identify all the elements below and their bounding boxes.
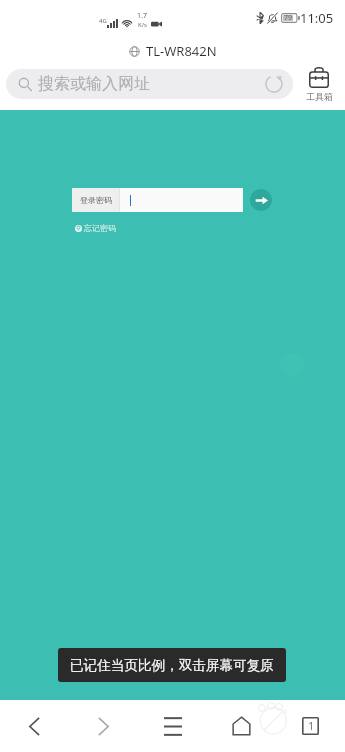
button[interactable]: Back bbox=[0, 700, 69, 752]
staticText: 79 bbox=[284, 13, 293, 23]
staticText: 搜索或输入网址 bbox=[38, 74, 150, 94]
staticText: 11:05 bbox=[300, 9, 334, 27]
staticText: 已记住当页比例，双击屏幕可复原 bbox=[70, 657, 274, 674]
staticText: 4G bbox=[99, 17, 107, 25]
button[interactable]: 搜索或输入网址 bbox=[6, 69, 293, 99]
button[interactable]: Tabs bbox=[276, 700, 345, 752]
button[interactable]: 登录密码 bbox=[72, 188, 243, 212]
button[interactable]: Login bbox=[250, 189, 272, 211]
button[interactable]: 忘记密码 bbox=[75, 223, 116, 233]
staticText: 1.7 bbox=[137, 11, 147, 21]
button[interactable]: Forward bbox=[69, 700, 138, 752]
staticText: K/s bbox=[138, 21, 147, 29]
button[interactable]: 工具箱 bbox=[302, 67, 336, 102]
button[interactable]: Refresh bbox=[259, 69, 289, 99]
button[interactable]: Menu bbox=[138, 700, 207, 752]
staticText: TL-WR842N bbox=[146, 42, 217, 60]
staticText: 1 bbox=[308, 719, 314, 733]
staticText: 登录密码 bbox=[80, 195, 112, 205]
staticText: 工具箱 bbox=[306, 91, 333, 102]
button[interactable]: Home bbox=[207, 700, 276, 752]
staticText: 忘记密码 bbox=[84, 223, 116, 233]
